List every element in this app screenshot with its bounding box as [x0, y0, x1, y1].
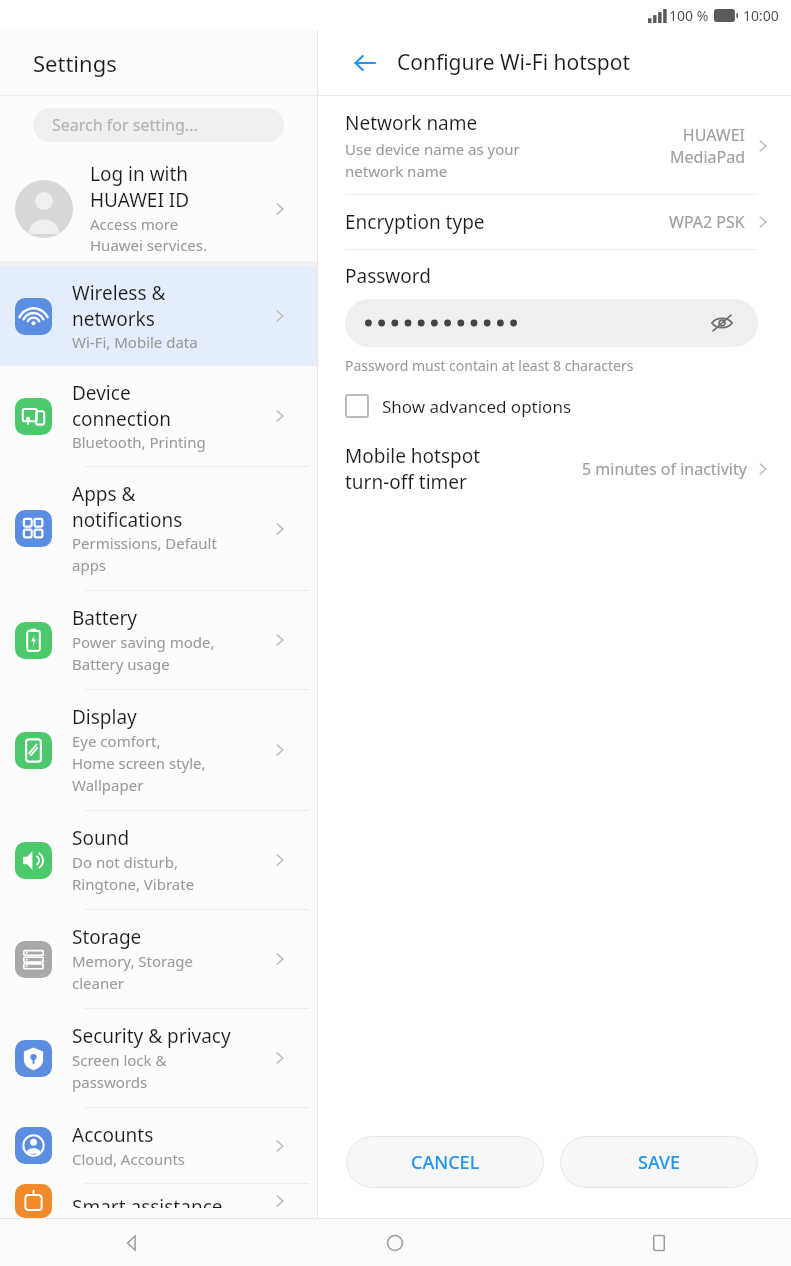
button[interactable]: Mobile hotspot turn-off timer	[318, 435, 791, 504]
button[interactable]: Smart assistance	[0, 1184, 317, 1218]
button[interactable]: SAVE	[560, 1136, 758, 1188]
staticText: Storage	[72, 924, 142, 950]
staticText: Password must contain at least 8 charact…	[345, 356, 634, 375]
staticText: Encryption type	[345, 209, 669, 235]
staticText: Memory, Storage cleaner	[72, 951, 194, 994]
staticText: Search for setting...	[52, 114, 198, 136]
button[interactable]: Network name	[318, 96, 791, 194]
button[interactable]: Home	[263, 1219, 527, 1266]
staticText: 100 %	[669, 6, 709, 25]
staticText: Bluetooth, Printing	[72, 432, 206, 452]
staticText: Accounts	[72, 1122, 154, 1148]
staticText: 10:00	[743, 6, 779, 25]
staticText: WPA2 PSK	[669, 211, 745, 233]
staticText: Sound	[72, 825, 130, 851]
staticText: Wi-Fi, Mobile data	[72, 332, 198, 352]
button[interactable]: Show password	[345, 299, 758, 347]
staticText: Network name	[345, 110, 478, 136]
button[interactable]: Sound	[0, 811, 317, 910]
staticText: Wireless & networks	[72, 280, 166, 331]
staticText: Battery	[72, 605, 137, 631]
staticText: Log in with HUAWEI ID	[90, 161, 190, 212]
staticText: Display	[72, 704, 137, 730]
button[interactable]: Battery	[0, 591, 317, 690]
staticText: Power saving mode, Battery usage	[72, 632, 215, 675]
staticText: Screen lock & passwords	[72, 1050, 167, 1093]
staticText: Permissions, Default apps	[72, 533, 217, 576]
button[interactable]: Back	[345, 43, 385, 83]
button[interactable]: Display	[0, 690, 317, 811]
staticText: Configure Wi-Fi hotspot	[397, 48, 631, 77]
staticText: CANCEL	[411, 1150, 480, 1175]
staticText: Settings	[33, 48, 117, 78]
button[interactable]: Recents	[527, 1219, 791, 1266]
staticText: Mobile hotspot turn-off timer	[345, 443, 582, 494]
staticText: SAVE	[638, 1150, 681, 1175]
staticText: HUAWEI MediaPad	[670, 124, 745, 168]
staticText: Apps & notifications	[72, 481, 183, 532]
button[interactable]: Encryption type	[318, 195, 791, 249]
button[interactable]: CANCEL	[346, 1136, 544, 1188]
staticText: Password	[345, 263, 431, 289]
button[interactable]: Wireless & networks	[0, 266, 317, 366]
staticText: Device connection	[72, 380, 171, 431]
staticText: Eye comfort, Home screen style, Wallpape…	[72, 731, 206, 796]
staticText: Access more Huawei services.	[90, 214, 208, 256]
button[interactable]: Log in with HUAWEI ID	[0, 156, 317, 261]
button[interactable]: Search for setting...	[33, 108, 284, 142]
button[interactable]: Security & privacy	[0, 1009, 317, 1108]
button[interactable]: Show advanced options	[345, 394, 572, 418]
staticText: Cloud, Accounts	[72, 1149, 186, 1169]
button[interactable]: Accounts	[0, 1108, 317, 1184]
staticText: Do not disturb, Ringtone, Vibrate	[72, 852, 195, 895]
button[interactable]: Show password	[706, 307, 738, 339]
staticText: Smart assistance	[72, 1194, 223, 1208]
button[interactable]: Storage	[0, 910, 317, 1009]
staticText: 5 minutes of inactivity	[582, 458, 747, 480]
staticText: Security & privacy	[72, 1023, 231, 1049]
button[interactable]: Device connection	[0, 366, 317, 467]
staticText: Use device name as your network name	[345, 139, 520, 182]
button[interactable]: Back	[0, 1219, 263, 1266]
staticText: Show advanced options	[382, 395, 572, 418]
button[interactable]: Apps & notifications	[0, 467, 317, 591]
